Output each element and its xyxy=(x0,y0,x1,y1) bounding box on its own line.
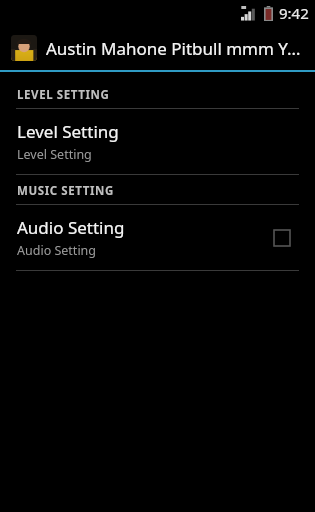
button[interactable]: Level Setting xyxy=(0,109,315,174)
staticText: Audio Setting xyxy=(17,242,97,259)
staticText: Level Setting xyxy=(17,120,119,143)
staticText: MUSIC SETTING xyxy=(17,183,114,199)
staticText: Audio Setting xyxy=(17,216,125,239)
other: App icon xyxy=(11,35,37,61)
staticText: Austin Mahone Pitbull mmm Y… xyxy=(46,37,307,60)
button[interactable]: Audio Setting xyxy=(0,205,315,270)
staticText: LEVEL SETTING xyxy=(17,87,110,103)
button[interactable]: Audio Setting toggle xyxy=(267,223,297,253)
staticText: 9:42 xyxy=(279,3,309,23)
staticText: Level Setting xyxy=(17,146,92,163)
